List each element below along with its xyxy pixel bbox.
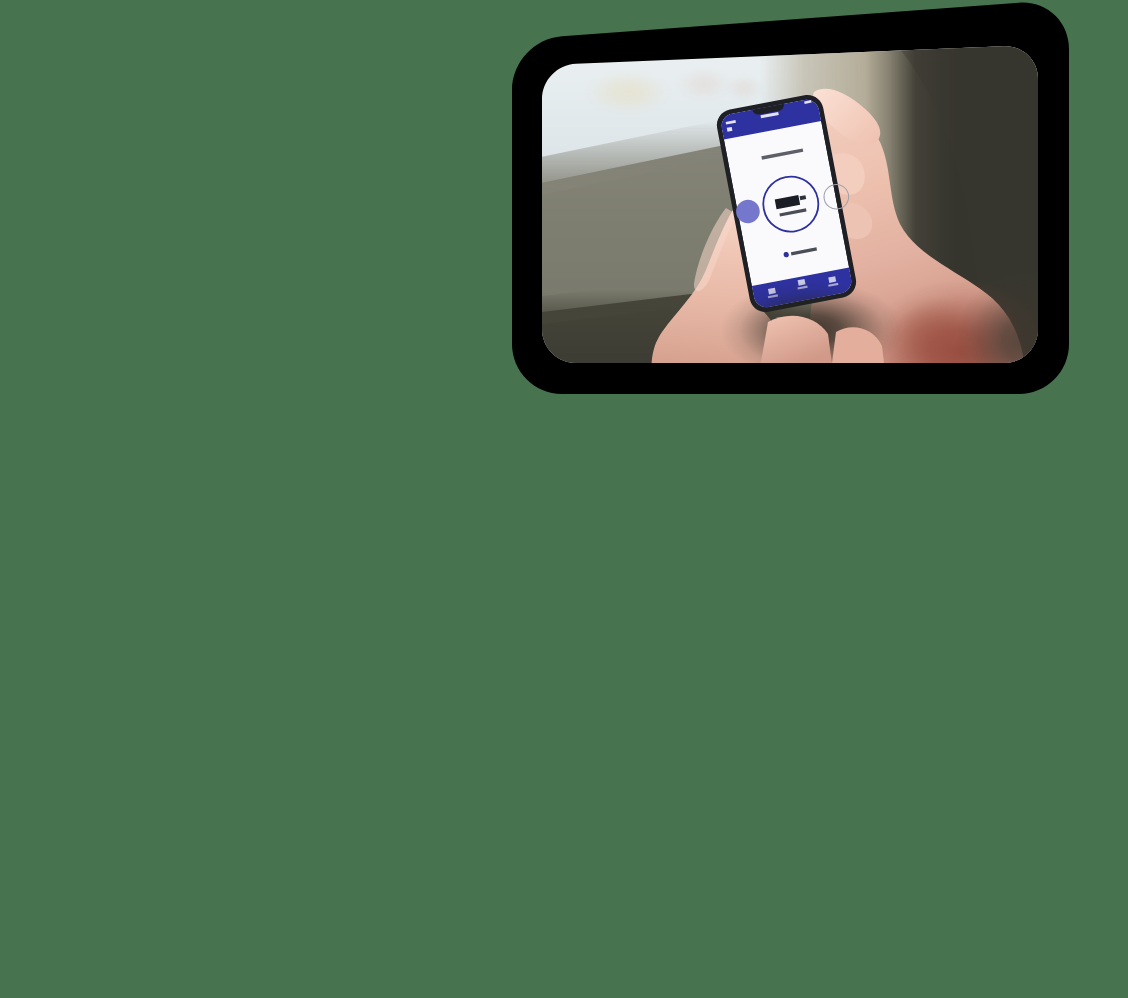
button[interactable]: Hands holding a phone showing the Balanc… (512, 0, 1069, 394)
